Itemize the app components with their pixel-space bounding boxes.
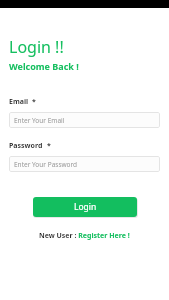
button[interactable]: Email input <box>9 112 160 128</box>
button[interactable]: Password input <box>9 156 160 172</box>
staticText: Login !! <box>9 36 64 58</box>
staticText: Enter Your Email <box>14 116 65 125</box>
staticText: New User : Register Here ! <box>39 231 130 241</box>
staticText: Email <box>9 97 30 107</box>
staticText: Password <box>9 141 45 151</box>
staticText: * <box>32 97 36 107</box>
staticText: Login <box>74 201 97 213</box>
staticText: * <box>47 141 51 151</box>
staticText: Enter Your Password <box>14 160 78 169</box>
button[interactable]: Login <box>33 197 137 217</box>
button[interactable]: New User : Register Here ! <box>35 229 134 243</box>
staticText: Welcome Back ! <box>9 60 79 72</box>
